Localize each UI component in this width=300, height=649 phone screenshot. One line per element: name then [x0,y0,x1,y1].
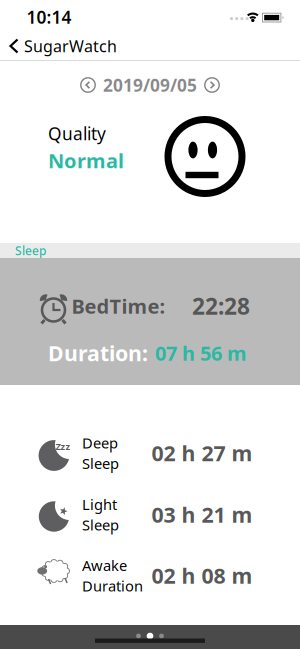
staticText: Zzz [55,440,70,452]
staticText: Sleep [82,515,119,534]
staticText: 10:14 [26,5,71,28]
staticText: Awake [82,555,127,575]
button[interactable]: Next day [204,77,220,93]
staticText: Deep [82,433,118,452]
staticText: BedTime: [71,293,165,319]
staticText: Duration [82,576,143,595]
staticText: Normal [48,147,124,174]
staticText: Light [82,494,117,514]
staticText: Sleep [82,453,119,473]
staticText: Duration: [48,339,148,367]
staticText: 22:28 [192,291,250,321]
button[interactable]: Previous day [80,77,96,93]
staticText: 03 h 21 m [151,500,252,529]
button[interactable]: Back [0,35,117,57]
staticText: 07 h 56 m [155,340,247,366]
staticText: 02 h 08 m [151,561,252,590]
staticText: 02 h 27 m [151,439,252,467]
staticText: 2019/09/05 [103,73,197,96]
staticText: Quality [48,122,106,145]
staticText: Sleep [15,242,46,258]
staticText: SugarWatch [24,35,117,57]
